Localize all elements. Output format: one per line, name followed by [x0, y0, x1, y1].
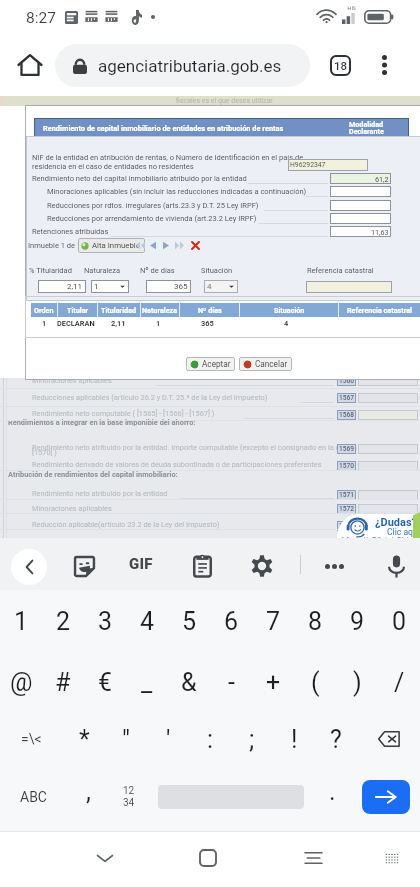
button[interactable]: 8	[294, 592, 336, 650]
staticText: 3	[98, 607, 113, 636]
button[interactable]: 2	[42, 592, 84, 650]
staticText: Titularidad	[101, 306, 137, 314]
staticText: Rendimiento de capital inmobiliario de e…	[43, 124, 284, 133]
staticText: GIF	[129, 555, 153, 573]
button[interactable]: Enter	[362, 780, 410, 814]
button[interactable]: _	[126, 653, 168, 711]
staticText: 0	[392, 607, 407, 636]
staticText: Retenciones atribuidas	[32, 227, 109, 236]
staticText: Nº de días	[140, 266, 175, 275]
staticText: 1	[94, 282, 118, 291]
button[interactable]: ;	[231, 711, 273, 767]
button[interactable]: Switch keyboard	[370, 836, 414, 880]
staticText: _	[141, 668, 153, 697]
button[interactable]: Aceptar	[186, 357, 235, 371]
button[interactable]: Minoraciones aplicables	[0, 96, 420, 538]
staticText: 1573	[339, 522, 354, 530]
staticText: % Titularidad	[29, 266, 72, 275]
staticText: 1	[42, 319, 47, 328]
button[interactable]: ?	[315, 711, 357, 767]
button[interactable]: 5	[168, 592, 210, 650]
button[interactable]: Recents	[291, 836, 335, 880]
button[interactable]: 0	[378, 592, 420, 650]
button[interactable]: Back	[11, 549, 47, 585]
button[interactable]: Backspace	[357, 711, 420, 767]
button[interactable]: )	[336, 653, 378, 711]
staticText: Naturaleza	[142, 306, 178, 314]
staticText: Reducción aplicable(artículo 23.2 de la …	[32, 520, 220, 529]
staticText: @	[10, 668, 33, 697]
staticText: ABC	[20, 789, 47, 805]
button[interactable]: #	[42, 653, 84, 711]
staticText: (	[311, 668, 320, 697]
staticText: DECLARANTE	[57, 319, 97, 328]
staticText: *	[79, 725, 90, 754]
button[interactable]: 7	[252, 592, 294, 650]
button[interactable]: Clipboard	[193, 555, 212, 577]
button[interactable]: !	[273, 711, 315, 767]
staticText: fiscales es el que desea utilizar	[176, 97, 273, 105]
button[interactable]: *	[63, 711, 105, 767]
staticText: 4	[207, 282, 227, 291]
staticText: )	[353, 668, 362, 697]
button[interactable]: +	[252, 653, 294, 711]
button[interactable]: 4	[126, 592, 168, 650]
staticText: /	[394, 668, 405, 697]
button[interactable]: €	[84, 653, 126, 711]
button[interactable]: Settings	[251, 555, 273, 577]
button[interactable]: 12	[110, 767, 148, 827]
button[interactable]: Stickers	[74, 556, 95, 577]
button[interactable]: GIF	[121, 553, 161, 575]
button[interactable]: 9	[336, 592, 378, 650]
button[interactable]: ¿Dudas?	[337, 514, 413, 560]
staticText: 4	[284, 319, 289, 328]
staticText: Situación	[274, 306, 305, 314]
button[interactable]: ,	[66, 767, 110, 827]
staticText: H96292347	[290, 161, 326, 169]
button[interactable]: Voice input	[388, 555, 405, 578]
button[interactable]: agenciatributaria.gob.es	[55, 44, 310, 87]
staticText: :	[207, 725, 214, 754]
staticText: "	[122, 725, 131, 754]
button[interactable]: Cancelar	[239, 357, 292, 371]
staticText: 1570	[339, 462, 354, 470]
button[interactable]: &	[168, 653, 210, 711]
button[interactable]: =\<	[0, 711, 63, 767]
button[interactable]: Hide keyboard	[83, 836, 127, 880]
button[interactable]: .	[312, 767, 352, 827]
button[interactable]: :	[189, 711, 231, 767]
staticText: 8	[308, 607, 323, 636]
staticText: Nº días	[198, 306, 222, 314]
button[interactable]: /	[378, 653, 420, 711]
button[interactable]: Tabs	[322, 47, 358, 83]
button[interactable]: (	[294, 653, 336, 711]
button[interactable]: More	[322, 554, 346, 578]
staticText: &	[181, 668, 197, 697]
button[interactable]: ABC	[0, 767, 66, 827]
button[interactable]: Home	[186, 836, 230, 880]
button[interactable]: 6	[210, 592, 252, 650]
staticText: Rendimiento derivado de valores de deuda…	[32, 460, 322, 469]
staticText: €	[98, 668, 113, 697]
staticText: Referencia catastral	[307, 266, 374, 275]
button[interactable]: -	[210, 653, 252, 711]
button[interactable]: 3	[84, 592, 126, 650]
staticText: 4	[140, 607, 155, 636]
staticText: 61,2	[375, 175, 389, 183]
button[interactable]: Alta Inmueble	[78, 238, 145, 253]
staticText: Información Tributaria Básica	[342, 536, 413, 542]
button[interactable]: 1	[0, 592, 42, 650]
button[interactable]: Home	[12, 47, 48, 83]
staticText: Declarante	[349, 127, 384, 135]
staticText: Inmueble 1 de 1	[28, 241, 82, 250]
button[interactable]: "	[105, 711, 147, 767]
staticText: Minoraciones aplicables (sin incluir las…	[47, 187, 307, 196]
staticText: !	[291, 725, 298, 754]
button[interactable]: '	[147, 711, 189, 767]
staticText: +	[266, 668, 281, 697]
staticText: 1568	[339, 411, 354, 419]
button[interactable]: @	[0, 653, 42, 711]
staticText: agenciatributaria.gob.es	[98, 56, 282, 76]
button[interactable]: More options	[366, 47, 402, 83]
